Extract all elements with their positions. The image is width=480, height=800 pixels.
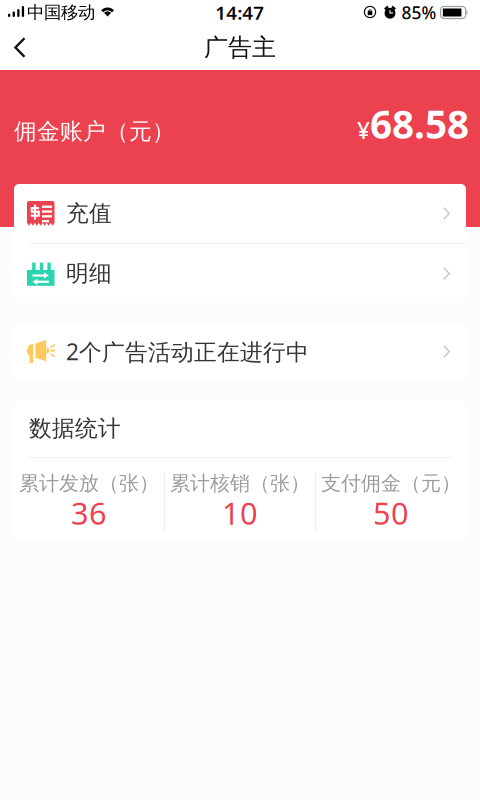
staticText: 14:47: [215, 0, 264, 25]
staticText: 广告主: [204, 33, 276, 62]
staticText: 85%: [401, 1, 436, 24]
button[interactable]: 2个广告活动正在进行中: [14, 322, 466, 381]
button[interactable]: 明细: [14, 244, 466, 303]
staticText: 累计发放（张）: [19, 471, 159, 496]
staticText: 充值: [66, 200, 112, 227]
staticText: 佣金账户（元）: [14, 117, 175, 145]
staticText: ¥: [357, 115, 370, 145]
button[interactable]: Back: [0, 25, 40, 69]
staticText: 累计核销（张）: [170, 471, 310, 496]
staticText: 50: [373, 493, 409, 533]
button[interactable]: 充值: [14, 184, 466, 243]
staticText: 中国移动: [27, 2, 95, 23]
staticText: 明细: [66, 260, 112, 287]
staticText: 10: [222, 493, 258, 533]
staticText: 36: [71, 493, 107, 533]
staticText: 68.58: [370, 98, 469, 149]
staticText: 2个广告活动正在进行中: [66, 336, 309, 366]
staticText: 支付佣金（元）: [321, 471, 461, 496]
staticText: 数据统计: [29, 415, 121, 442]
